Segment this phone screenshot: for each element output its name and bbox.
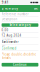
button[interactable]: Status — [2, 44, 38, 51]
staticText: ‹ — [2, 5, 4, 12]
button[interactable]: Amount — [2, 28, 38, 31]
button[interactable]: Select category — [2, 23, 38, 27]
staticText: Payment method — [2, 38, 13, 40]
staticText: Bank transfer — [2, 40, 19, 44]
staticText: 9:41 — [2, 1, 9, 4]
staticText: 0.00 — [2, 28, 9, 32]
button[interactable]: Date — [2, 31, 38, 38]
button[interactable]: Payment method — [2, 38, 38, 44]
staticText: Save — [34, 7, 39, 10]
button[interactable]: Continue — [2, 63, 38, 66]
staticText: New Entry — [5, 7, 18, 10]
button[interactable]: Save — [34, 5, 39, 12]
staticText: Continue — [13, 63, 27, 66]
staticText: Please double-check the details — [2, 53, 37, 60]
button[interactable]: Reference number — [2, 12, 38, 17]
staticText: Reference number — [2, 13, 29, 16]
staticText: Status — [2, 45, 6, 47]
button[interactable]: Back — [1, 5, 4, 12]
button[interactable]: Description — [2, 17, 38, 22]
staticText: Amount — [2, 27, 7, 28]
staticText: Date — [2, 32, 5, 34]
staticText: Select category — [9, 23, 30, 27]
staticText: Confirmed — [2, 47, 17, 50]
staticText: Description — [2, 17, 18, 21]
staticText: 12 Aug 2024 — [2, 34, 22, 37]
